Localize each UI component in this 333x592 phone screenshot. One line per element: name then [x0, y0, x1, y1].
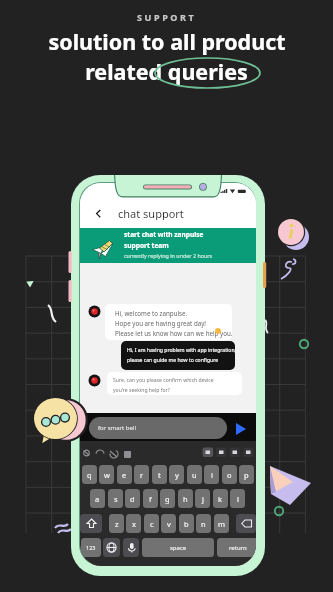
- button[interactable]: Send: [233, 421, 249, 437]
- button[interactable]: b: [179, 514, 194, 533]
- staticText: h: [183, 494, 188, 504]
- staticText: z: [115, 519, 119, 529]
- staticText: s: [114, 494, 118, 504]
- button[interactable]: a: [90, 489, 105, 508]
- staticText: support team: [124, 241, 169, 250]
- button[interactable]: w: [99, 465, 114, 484]
- staticText: w: [104, 470, 110, 480]
- button[interactable]: start chat with zanpulse: [80, 228, 256, 263]
- staticText: for smart bell: [98, 424, 136, 432]
- button[interactable]: for smart bell: [89, 417, 227, 439]
- staticText: related queries: [85, 57, 248, 86]
- staticText: p: [244, 470, 249, 480]
- staticText: r: [140, 470, 144, 480]
- staticText: b: [184, 519, 189, 529]
- staticText: x: [132, 519, 136, 529]
- staticText: solution to all product: [48, 27, 286, 56]
- button[interactable]: q: [82, 465, 97, 484]
- button[interactable]: o: [222, 465, 237, 484]
- staticText: k: [218, 494, 223, 504]
- button[interactable]: delete: [236, 514, 256, 533]
- staticText: you're seeking help for?: [113, 387, 170, 394]
- button[interactable]: 123: [81, 538, 101, 557]
- staticText: Hope you are having great day!: [115, 319, 206, 327]
- staticText: f: [149, 494, 152, 504]
- button[interactable]: return: [217, 538, 256, 557]
- staticText: Hi, I am having problem with app integra…: [127, 347, 235, 354]
- button[interactable]: y: [169, 465, 184, 484]
- button[interactable]: mic: [123, 538, 139, 557]
- staticText: t: [158, 470, 161, 480]
- staticText: m: [218, 519, 226, 529]
- button[interactable]: z: [109, 514, 124, 533]
- button[interactable]: m: [214, 514, 229, 533]
- staticText: g: [165, 494, 170, 504]
- staticText: start chat with zanpulse: [124, 230, 204, 239]
- staticText: SUPPORT: [137, 11, 197, 23]
- staticText: Sure, can you please confirm which devic…: [113, 377, 214, 384]
- button[interactable]: e: [117, 465, 132, 484]
- button[interactable]: globe: [103, 538, 120, 557]
- button[interactable]: chat support: [113, 206, 179, 220]
- staticText: n: [201, 519, 206, 529]
- button[interactable]: u: [187, 465, 202, 484]
- staticText: q: [87, 470, 92, 480]
- button[interactable]: t: [152, 465, 167, 484]
- staticText: v: [167, 519, 171, 529]
- button[interactable]: p: [239, 465, 254, 484]
- staticText: j: [202, 494, 204, 504]
- staticText: space: [170, 544, 187, 552]
- staticText: d: [130, 494, 135, 504]
- staticText: e: [122, 470, 127, 480]
- button[interactable]: h: [178, 489, 193, 508]
- staticText: return: [229, 544, 247, 552]
- button[interactable]: x: [126, 514, 141, 533]
- button[interactable]: d: [125, 489, 140, 508]
- button[interactable]: v: [161, 514, 176, 533]
- staticText: a: [95, 494, 100, 504]
- staticText: please can guide me how to configure: [127, 357, 219, 364]
- staticText: i: [211, 470, 213, 480]
- staticText: u: [192, 470, 197, 480]
- button[interactable]: n: [196, 514, 211, 533]
- staticText: Please let us know how can we help you.: [115, 329, 232, 337]
- button[interactable]: k: [213, 489, 228, 508]
- button[interactable]: f: [143, 489, 158, 508]
- staticText: 123: [86, 544, 96, 551]
- button[interactable]: j: [195, 489, 210, 508]
- staticText: currently replying in under 2 hours: [124, 252, 213, 259]
- staticText: y: [175, 470, 179, 480]
- staticText: l: [237, 494, 239, 504]
- button[interactable]: c: [144, 514, 159, 533]
- button[interactable]: r: [134, 465, 149, 484]
- button[interactable]: Back: [90, 206, 106, 220]
- button[interactable]: l: [230, 489, 245, 508]
- button[interactable]: shift: [80, 514, 102, 533]
- button[interactable]: g: [160, 489, 175, 508]
- button[interactable]: i: [204, 465, 219, 484]
- staticText: o: [227, 470, 232, 480]
- staticText: Hi, welcome to zanpulse.: [115, 309, 188, 317]
- staticText: c: [150, 519, 154, 529]
- staticText: chat support: [118, 206, 184, 220]
- button[interactable]: s: [108, 489, 123, 508]
- button[interactable]: space: [142, 538, 214, 557]
